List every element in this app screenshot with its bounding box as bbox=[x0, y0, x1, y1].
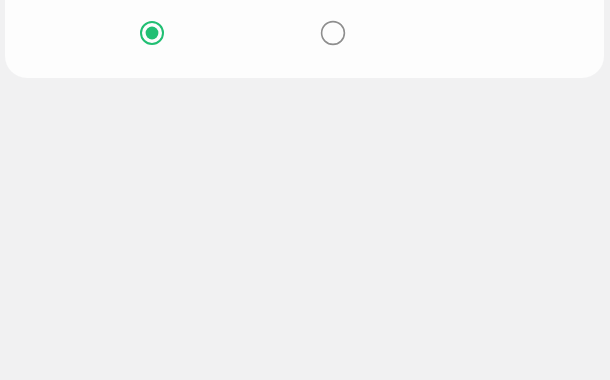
button[interactable]: Option one, selected bbox=[130, 11, 174, 55]
button[interactable]: Option two bbox=[311, 11, 355, 55]
